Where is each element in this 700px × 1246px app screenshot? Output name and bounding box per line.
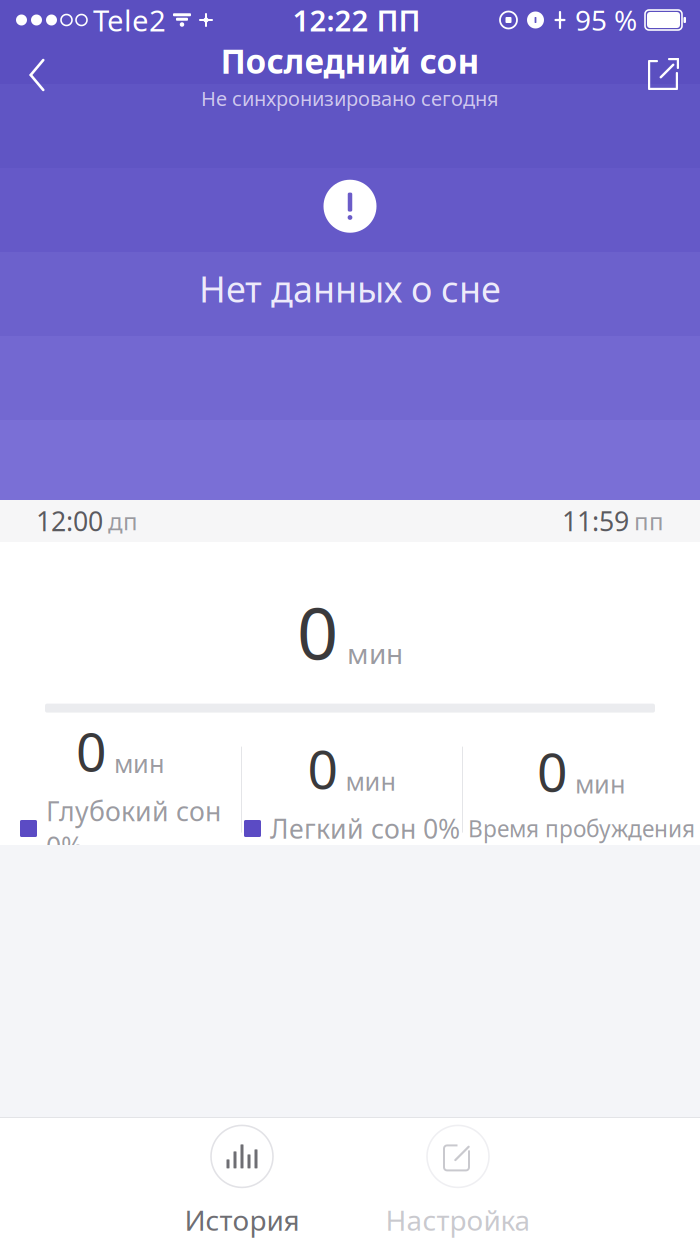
staticText: 0 [537,736,568,806]
staticText: Время пробуждения [468,813,695,844]
staticText: пп [634,505,664,537]
staticText: 0 [297,584,338,680]
staticText: Нет данных о сне [199,265,501,312]
button[interactable]: Назад [0,40,74,110]
staticText: Tele2 [93,0,166,39]
staticText: 12:00 [36,503,103,539]
staticText: мин [345,764,396,798]
staticText: Глубокий сон 0% [46,793,221,864]
staticText: мин [347,634,403,672]
staticText: Легкий сон 0% [270,811,460,846]
staticText: 0 [76,715,107,786]
staticText: 0 [307,733,338,804]
staticText: 12:22 ПП [292,0,420,39]
staticText: Настройка [385,1201,530,1239]
staticText: дп [108,505,138,537]
staticText: Последний сон [220,39,479,83]
staticText: 95 % [575,1,637,39]
staticText: мин [114,746,165,780]
button[interactable]: Настройка [368,1118,548,1246]
staticText: История [184,1201,299,1239]
staticText: 11:59 [562,503,629,539]
button[interactable]: История [152,1118,332,1246]
staticText: Не синхронизировано сегодня [201,85,499,111]
staticText: мин [575,767,626,800]
button[interactable]: Поделиться [626,40,700,110]
